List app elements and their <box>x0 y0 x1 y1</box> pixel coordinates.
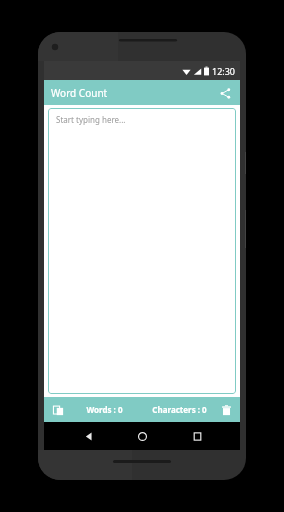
button[interactable]: Share <box>216 84 234 102</box>
button[interactable]: Copy <box>49 401 67 419</box>
button[interactable]: Clear <box>217 401 235 419</box>
staticText: Start typing here... <box>56 114 126 125</box>
button[interactable]: Start typing here... <box>48 108 236 394</box>
button[interactable]: Home <box>131 425 153 447</box>
staticText: 12:30 <box>212 65 236 77</box>
staticText: Words : 0 <box>86 404 123 415</box>
button[interactable]: Recent apps <box>186 425 208 447</box>
staticText: Word Count <box>51 86 108 100</box>
staticText: Characters : 0 <box>152 404 207 415</box>
button[interactable]: Back <box>77 425 99 447</box>
